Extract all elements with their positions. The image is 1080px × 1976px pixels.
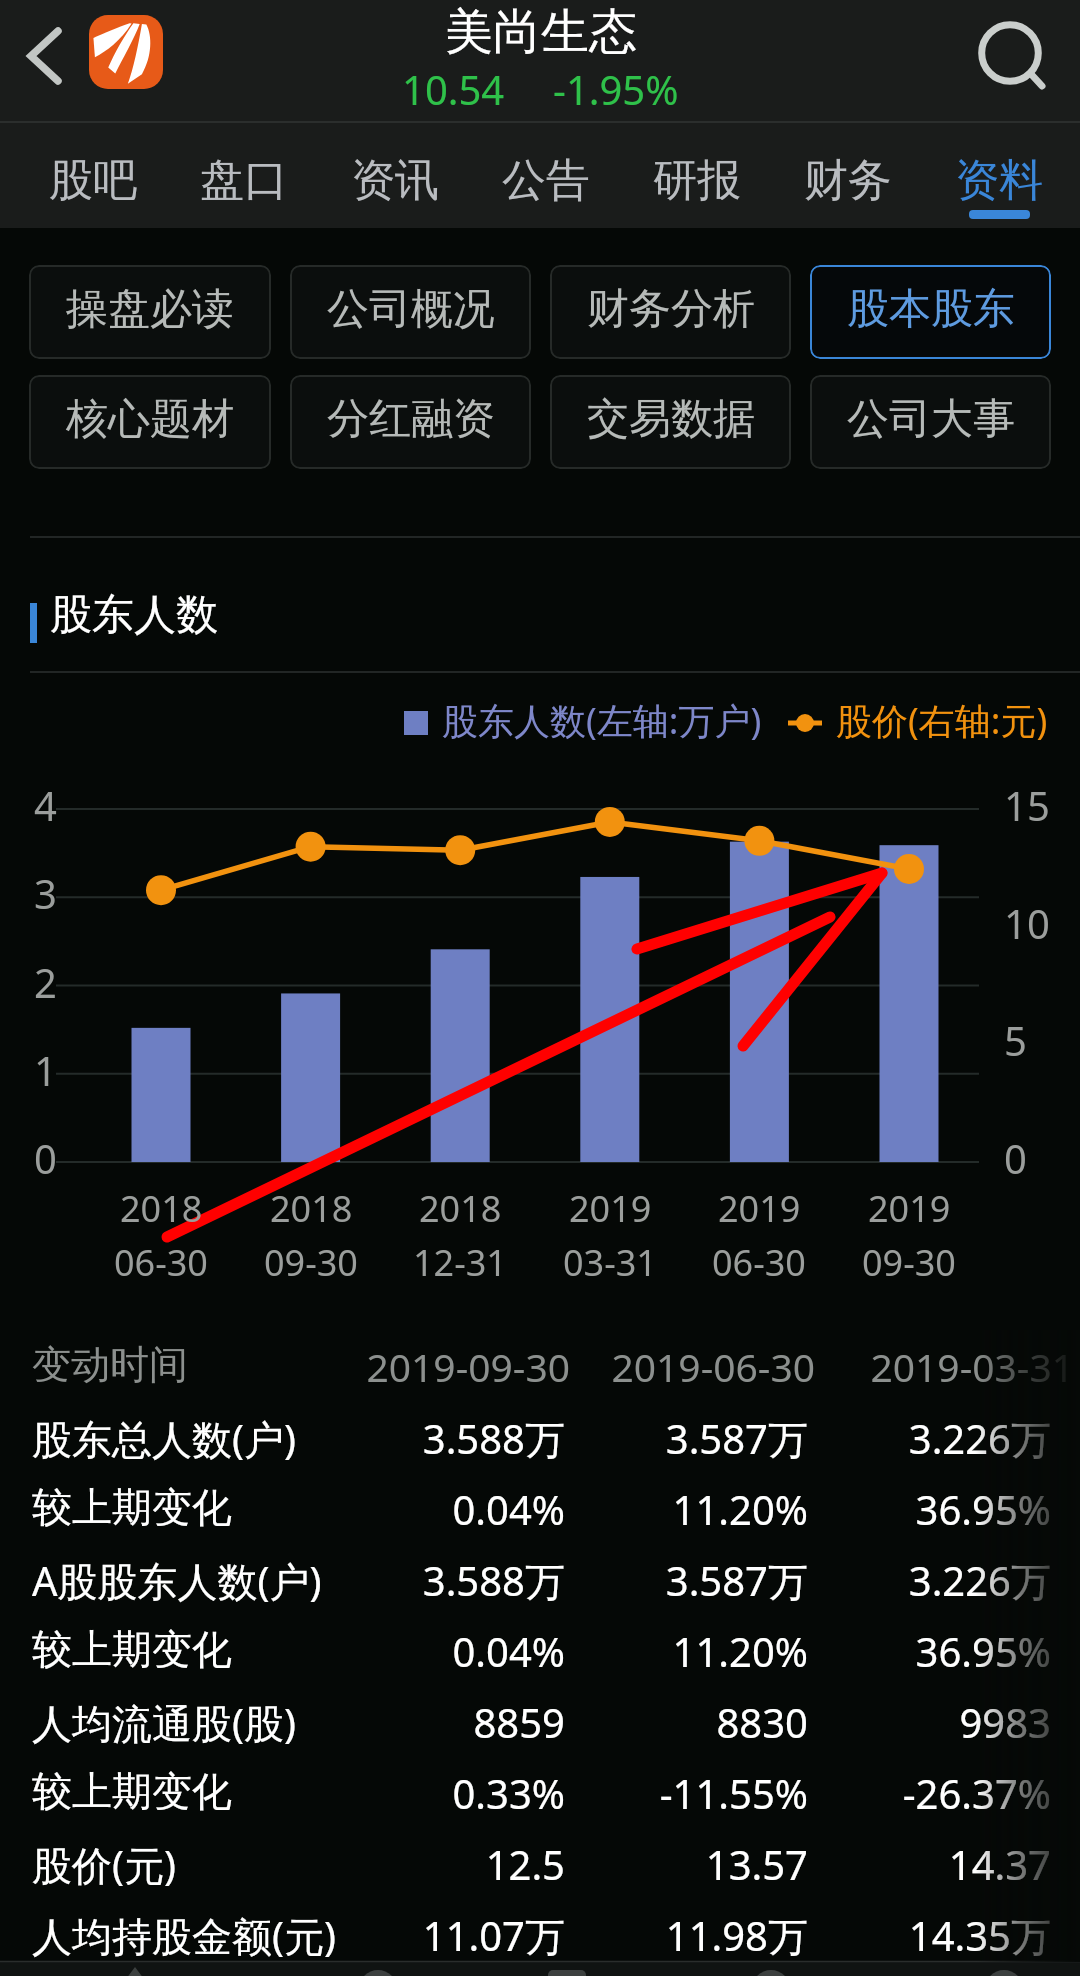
staticText: -1.95% <box>553 62 679 116</box>
staticText: 操盘必读 <box>66 283 234 336</box>
staticText: 股吧 <box>49 153 137 208</box>
button[interactable]: A股股东人数(户) <box>0 1543 1080 1614</box>
staticText: 15 <box>1004 778 1050 832</box>
staticText: 人均持股金额(元) <box>32 1908 336 1963</box>
staticText: 12-31 <box>413 1238 507 1287</box>
staticText: 变动时间 <box>32 1340 188 1389</box>
staticText: 3.226万 <box>751 1411 1051 1466</box>
button[interactable]: Search <box>960 4 1056 100</box>
staticText: 06-30 <box>114 1238 208 1287</box>
button[interactable]: Eastmoney logo <box>89 15 163 89</box>
button[interactable]: 公司大事 <box>810 375 1051 469</box>
staticText: -11.55% <box>508 1766 808 1820</box>
staticText: 3.588万 <box>265 1553 565 1608</box>
button[interactable]: 公司概况 <box>290 265 531 359</box>
staticText: 03-31 <box>563 1238 657 1287</box>
staticText: -26.37% <box>751 1766 1051 1820</box>
staticText: 较上期变化 <box>32 1624 232 1674</box>
button[interactable]: 人均流通股(股) <box>0 1685 1080 1756</box>
staticText: 公告 <box>502 153 590 208</box>
staticText: 36.95% <box>751 1624 1051 1678</box>
staticText: 0.04% <box>265 1624 565 1678</box>
staticText: 10 <box>1004 896 1050 950</box>
button[interactable]: 研报 <box>639 123 755 228</box>
staticText: 0 <box>34 1131 57 1185</box>
button[interactable]: 较上期变化 <box>0 1614 1080 1685</box>
staticText: 11.07万 <box>265 1908 565 1963</box>
staticText: 3.587万 <box>508 1553 808 1608</box>
button[interactable]: 分红融资 <box>290 375 531 469</box>
staticText: 3.226万 <box>751 1553 1051 1608</box>
staticText: 0.33% <box>265 1766 565 1820</box>
staticText: 12.5 <box>265 1837 565 1891</box>
staticText: 10.54 <box>402 62 505 116</box>
button[interactable]: 盘口 <box>186 123 302 228</box>
button[interactable]: 股吧 <box>35 123 151 228</box>
staticText: 09-30 <box>264 1238 358 1287</box>
staticText: 5 <box>1004 1013 1027 1067</box>
staticText: 13.57 <box>508 1837 808 1891</box>
staticText: 股东人数 <box>50 589 218 642</box>
button[interactable]: Discover <box>648 1961 864 1976</box>
staticText: 较上期变化 <box>32 1766 232 1816</box>
button[interactable]: 变动时间 <box>0 1330 1080 1401</box>
staticText: 股东人数(左轴:万户) <box>442 696 762 745</box>
button[interactable]: 交易数据 <box>550 375 791 469</box>
staticText: 2019-06-30 <box>515 1340 815 1393</box>
staticText: 公司大事 <box>847 393 1015 446</box>
staticText: 财务 <box>804 153 892 208</box>
button[interactable]: 较上期变化 <box>0 1472 1080 1543</box>
button[interactable]: 较上期变化 <box>0 1756 1080 1827</box>
staticText: 8859 <box>265 1695 565 1749</box>
staticText: A股股东人数(户) <box>32 1553 322 1608</box>
staticText: 股本股东 <box>847 283 1015 336</box>
staticText: 2019 <box>569 1184 652 1233</box>
staticText: 09-30 <box>862 1238 956 1287</box>
staticText: 06-30 <box>712 1238 806 1287</box>
staticText: 公司概况 <box>327 283 495 336</box>
staticText: 人均流通股(股) <box>32 1695 296 1750</box>
staticText: 股价(元) <box>32 1837 176 1892</box>
staticText: 盘口 <box>200 153 288 208</box>
staticText: 2019 <box>718 1184 801 1233</box>
staticText: 资讯 <box>351 153 439 208</box>
button[interactable]: 财务分析 <box>550 265 791 359</box>
staticText: 4 <box>34 778 57 832</box>
staticText: 核心题材 <box>66 393 234 446</box>
button[interactable]: 资讯 <box>337 123 453 228</box>
staticText: 2019-09-30 <box>270 1340 570 1393</box>
button[interactable]: Back <box>6 8 92 94</box>
staticText: 资料 <box>955 153 1043 208</box>
staticText: 2018 <box>120 1184 203 1233</box>
staticText: 财务分析 <box>587 283 755 336</box>
button[interactable]: Profile <box>864 1961 1080 1976</box>
button[interactable]: Trade <box>432 1961 648 1976</box>
staticText: 分红融资 <box>327 393 495 446</box>
staticText: 11.98万 <box>508 1908 808 1963</box>
staticText: 1 <box>34 1043 57 1097</box>
button[interactable]: 核心题材 <box>29 375 271 469</box>
staticText: 2018 <box>270 1184 353 1233</box>
staticText: 0 <box>1004 1131 1027 1185</box>
button[interactable]: 财务 <box>790 123 906 228</box>
staticText: 0.04% <box>265 1482 565 1536</box>
staticText: 交易数据 <box>587 393 755 446</box>
button[interactable]: Markets <box>216 1961 432 1976</box>
button[interactable]: Home <box>0 1961 216 1976</box>
staticText: 研报 <box>653 153 741 208</box>
staticText: 股价(右轴:元) <box>836 696 1048 745</box>
button[interactable]: 股东总人数(户) <box>0 1401 1080 1472</box>
staticText: 14.37 <box>751 1837 1051 1891</box>
staticText: 8830 <box>508 1695 808 1749</box>
staticText: 9983 <box>751 1695 1051 1749</box>
button[interactable]: 公告 <box>488 123 604 228</box>
button[interactable]: 股本股东 <box>810 265 1051 359</box>
staticText: 36.95% <box>751 1482 1051 1536</box>
staticText: 2019 <box>868 1184 951 1233</box>
staticText: 股东总人数(户) <box>32 1411 296 1466</box>
button[interactable]: 资料 <box>941 123 1057 228</box>
button[interactable]: 操盘必读 <box>29 265 271 359</box>
button[interactable]: 股价(元) <box>0 1827 1080 1898</box>
staticText: 美尚生态 <box>445 2 637 62</box>
button[interactable]: 人均持股金额(元) <box>0 1898 1080 1969</box>
